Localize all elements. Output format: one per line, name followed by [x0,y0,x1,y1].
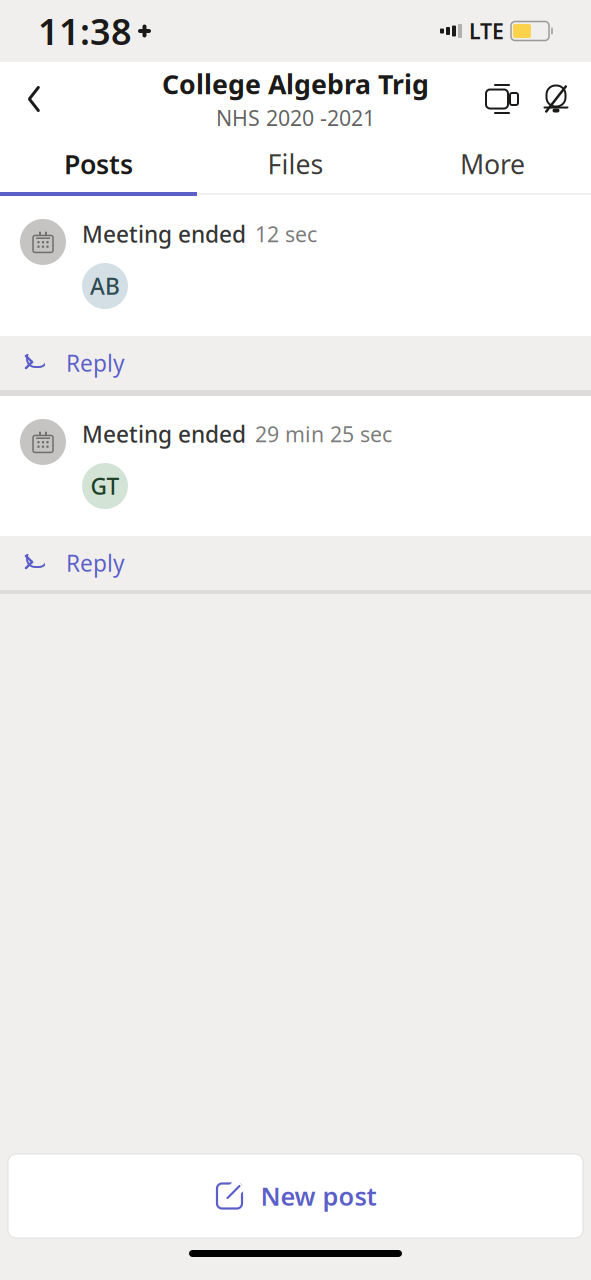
staticText: 29 min 25 sec [255,420,392,448]
button[interactable]: Posts [0,136,197,192]
button[interactable]: Reply [0,536,591,590]
button[interactable]: Files [197,136,394,192]
button[interactable]: Notifications off [529,71,583,127]
staticText: LTE [469,17,504,45]
staticText: Meeting ended [82,419,246,449]
button[interactable]: New post [0,1154,591,1250]
button[interactable]: More [394,136,591,192]
button[interactable]: Meeting ended [0,396,591,536]
button[interactable]: Meeting ended [0,196,591,336]
button[interactable]: Meet now [475,71,529,127]
button[interactable]: Reply [0,336,591,390]
staticText: Meeting ended [82,219,246,249]
staticText: 11:38 [38,7,132,55]
staticText: New post [260,1179,376,1213]
staticText: College Algebra Trig [162,66,429,101]
button[interactable]: Back [8,71,60,127]
staticText: AB [90,271,120,301]
staticText: NHS 2020 -2021 [216,103,375,132]
staticText: More [460,146,525,182]
staticText: Reply [66,548,125,578]
staticText: 12 sec [255,220,317,248]
staticText: Posts [64,146,133,182]
staticText: Reply [66,348,125,378]
staticText: Files [267,146,323,182]
staticText: GT [90,471,119,501]
